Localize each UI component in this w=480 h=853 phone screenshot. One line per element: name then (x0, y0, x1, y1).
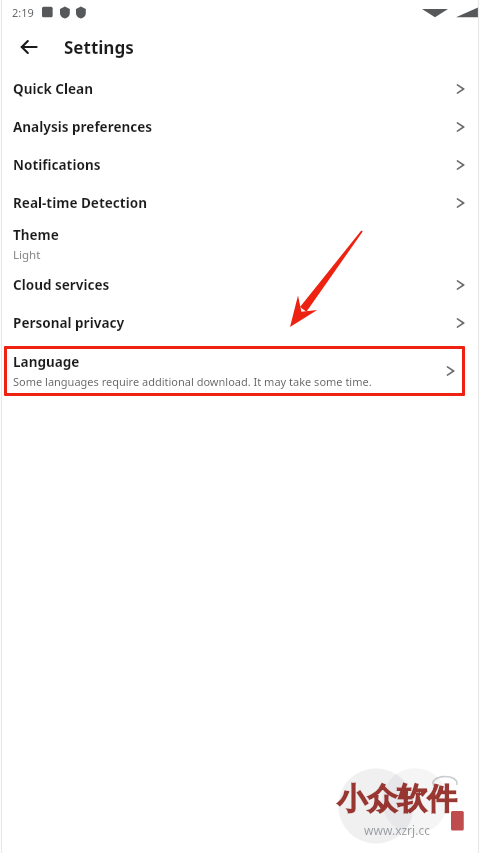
staticText: Language (13, 353, 80, 371)
staticText: Some languages require additional downlo… (13, 374, 372, 389)
staticText: Settings (64, 36, 134, 59)
staticText: www.xzrj.cc (364, 822, 430, 838)
staticText: Cloud services (13, 276, 110, 294)
staticText: Personal privacy (13, 314, 125, 332)
staticText: Real-time Detection (13, 194, 147, 212)
staticText: Theme (13, 226, 59, 244)
button[interactable]: Language (4, 346, 465, 396)
staticText: Quick Clean (13, 80, 93, 98)
button[interactable]: Analysis preferences (0, 108, 480, 146)
staticText: Analysis preferences (13, 118, 153, 136)
button[interactable]: Theme (0, 222, 480, 266)
button[interactable]: Quick Clean (0, 70, 480, 108)
button[interactable]: Back (11, 29, 47, 65)
staticText: Light (13, 247, 41, 263)
button[interactable]: Cloud services (0, 266, 480, 304)
button[interactable]: Notifications (0, 146, 480, 184)
staticText: 小众软件 (337, 780, 457, 818)
button[interactable]: Real-time Detection (0, 184, 480, 222)
staticText: 2:19 (12, 5, 34, 20)
button[interactable]: Personal privacy (0, 304, 480, 342)
staticText: Notifications (13, 156, 101, 174)
